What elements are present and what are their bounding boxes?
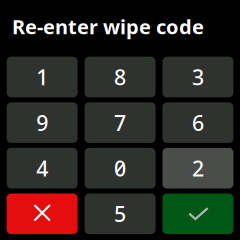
button[interactable]: Confirm <box>162 193 233 234</box>
button[interactable]: 9 <box>7 102 78 143</box>
staticText: 2 <box>192 154 204 182</box>
staticText: 1 <box>36 63 48 91</box>
staticText: 9 <box>36 108 48 137</box>
staticText: 7 <box>114 108 126 137</box>
staticText: 4 <box>36 154 48 182</box>
button[interactable]: 6 <box>162 102 233 143</box>
button[interactable]: 4 <box>7 148 78 188</box>
staticText: Re-enter wipe code <box>12 13 204 40</box>
staticText: 5 <box>114 200 126 228</box>
staticText: 6 <box>192 108 204 137</box>
staticText: 3 <box>192 63 204 91</box>
button[interactable]: 2 <box>162 148 233 188</box>
button[interactable]: 8 <box>85 57 155 97</box>
staticText: 8 <box>114 63 126 91</box>
button[interactable]: 1 <box>7 57 78 97</box>
button[interactable]: 3 <box>162 57 233 97</box>
staticText: 0 <box>114 154 126 182</box>
button[interactable]: Cancel <box>7 193 78 234</box>
button[interactable]: 7 <box>85 102 155 143</box>
button[interactable]: 5 <box>85 193 155 234</box>
button[interactable]: 0 <box>85 148 155 188</box>
